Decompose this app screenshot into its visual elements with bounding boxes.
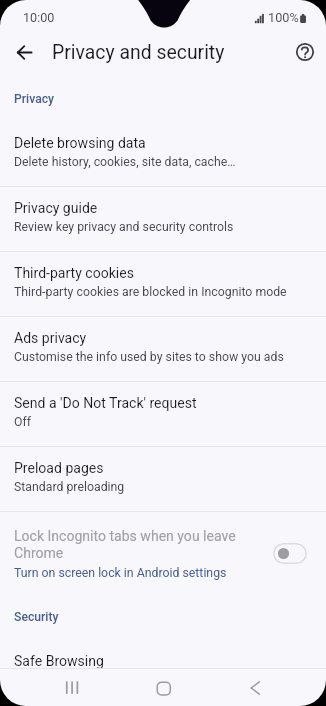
staticText: 10:00 — [23, 10, 55, 25]
button[interactable] — [0, 446, 326, 511]
staticText: Ads privacy — [14, 330, 87, 346]
staticText: Privacy guide — [14, 200, 98, 216]
staticText: Delete browsing data — [14, 135, 146, 151]
staticText: Preload pages — [14, 460, 104, 476]
button[interactable] — [0, 316, 326, 381]
staticText: Off — [14, 415, 32, 429]
staticText: Lock Incognito tabs when you leave — [14, 528, 236, 544]
staticText: Review key privacy and security controls — [14, 220, 234, 234]
staticText: Third-party cookies — [14, 265, 134, 281]
staticText: Delete history, cookies, site data, cach… — [14, 155, 236, 169]
button[interactable] — [0, 121, 326, 186]
staticText: Standard preloading — [14, 480, 125, 494]
button[interactable] — [0, 186, 326, 251]
button[interactable]: Back — [6, 34, 42, 70]
staticText: Privacy — [14, 92, 55, 106]
staticText: Chrome — [14, 545, 64, 561]
button[interactable]: Recent apps — [51, 669, 91, 706]
staticText: Customise the info used by sites to show… — [14, 350, 284, 364]
staticText: Privacy and security — [52, 41, 225, 64]
staticText: 100% — [268, 10, 299, 25]
staticText: Security — [14, 610, 59, 624]
button[interactable]: Lock Incognito tabs toggle — [273, 543, 307, 564]
staticText: Turn on screen lock in Android settings — [14, 566, 227, 580]
button[interactable] — [0, 511, 326, 591]
button[interactable]: Help — [287, 34, 323, 70]
staticText: Send a 'Do Not Track' request — [14, 395, 197, 411]
button[interactable] — [0, 381, 326, 446]
staticText: Third-party cookies are blocked in Incog… — [14, 285, 287, 299]
staticText: Safe Browsing — [14, 653, 104, 669]
button[interactable] — [0, 251, 326, 316]
button[interactable]: Home — [143, 669, 183, 706]
button[interactable]: Back — [236, 669, 276, 706]
